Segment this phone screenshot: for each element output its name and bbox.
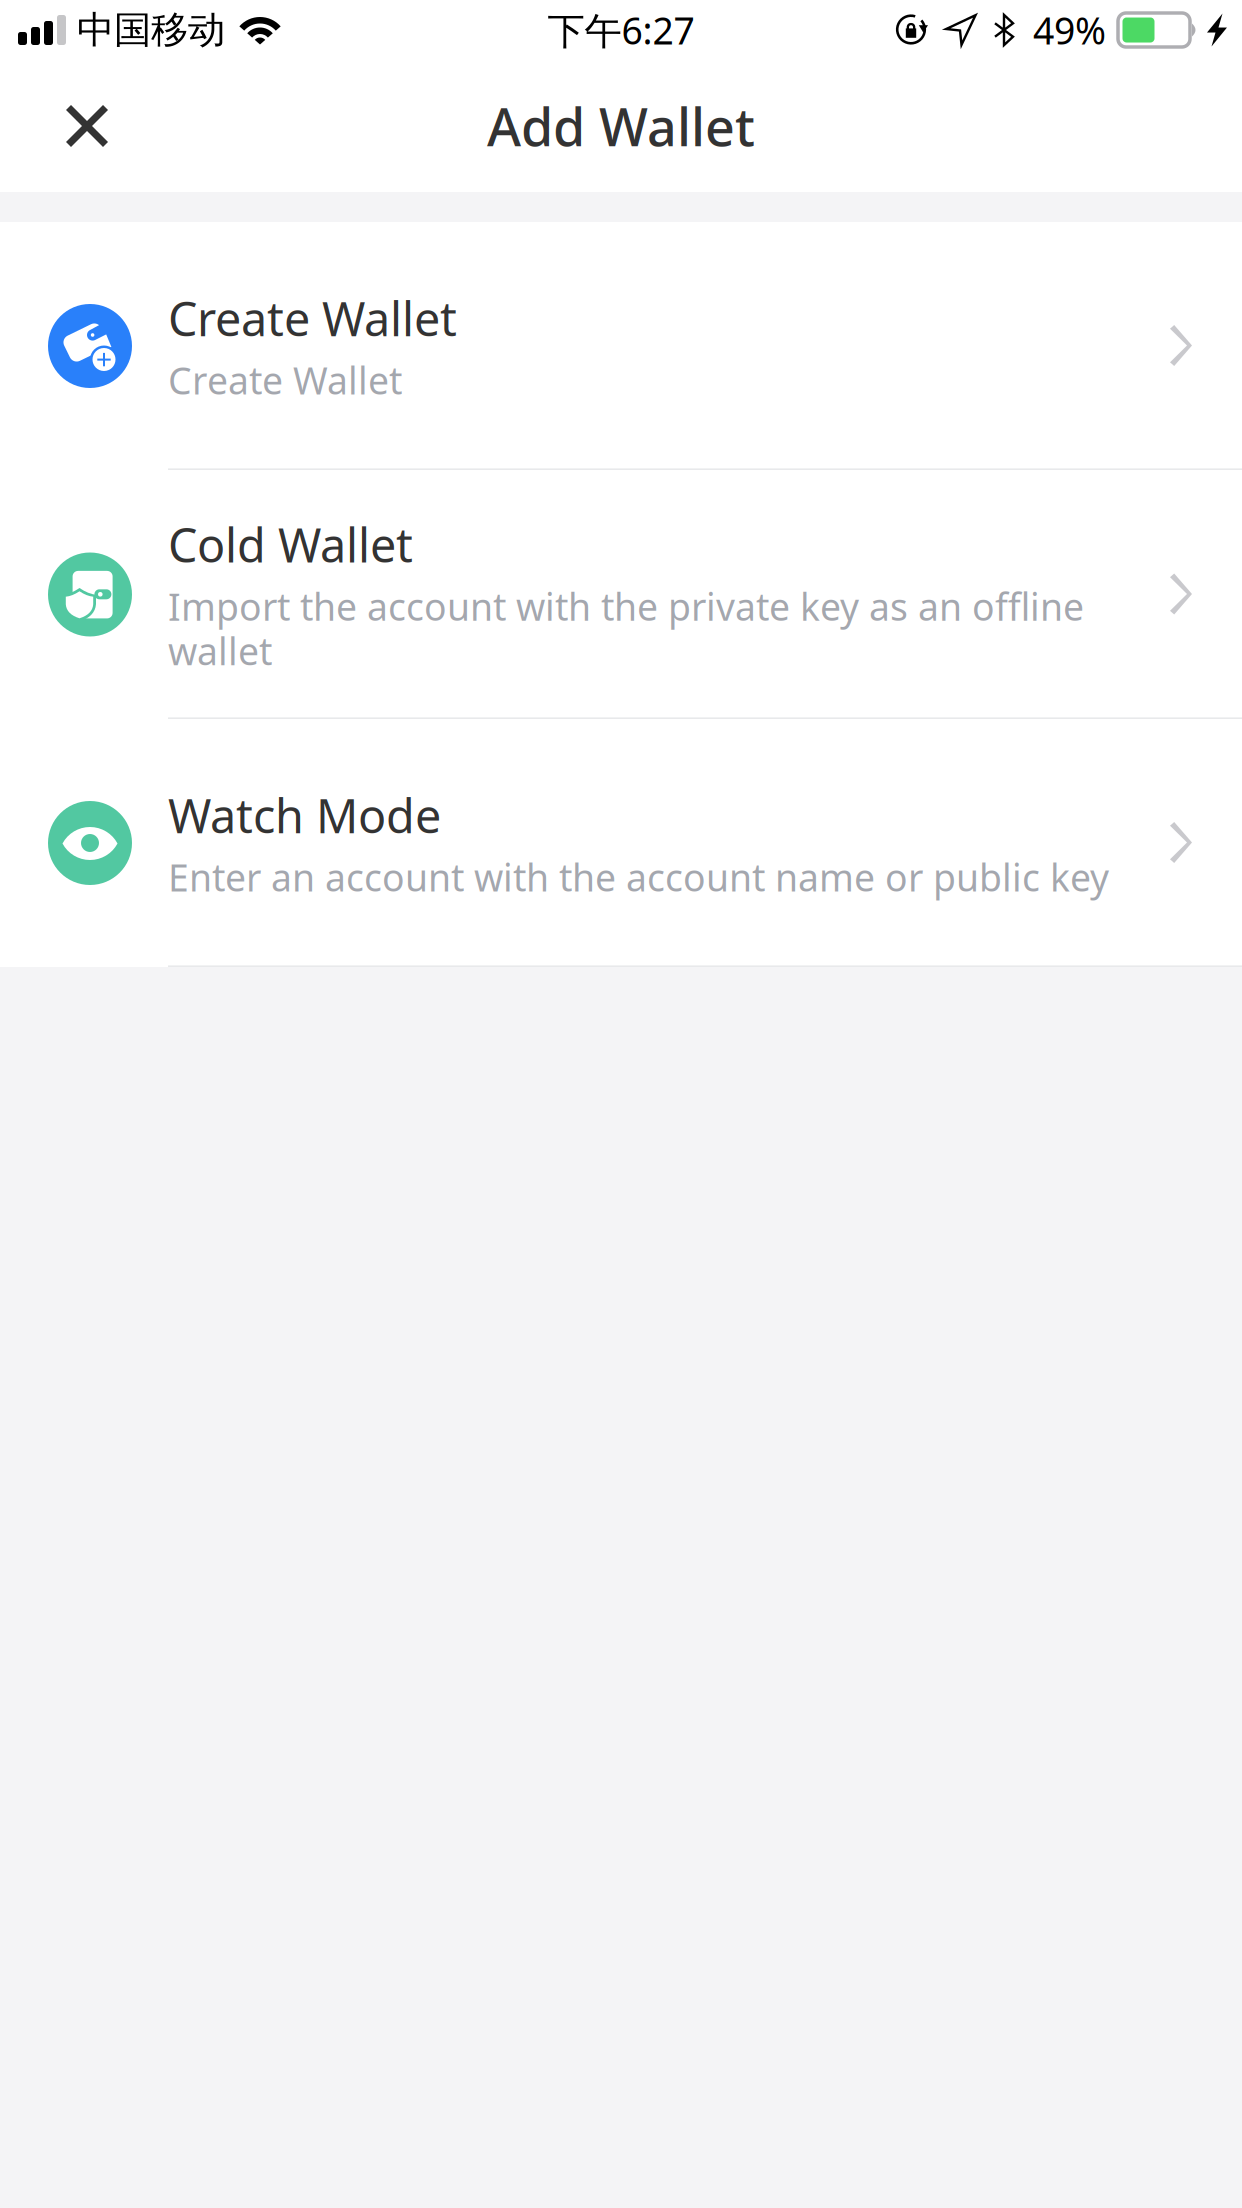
button[interactable]: Watch Mode xyxy=(0,719,1242,967)
staticText: Enter an account with the account name o… xyxy=(168,852,1109,902)
staticText: Import the account with the private key … xyxy=(168,581,1084,676)
staticText: 49% xyxy=(1033,5,1106,55)
staticText: 下午6:27 xyxy=(547,5,694,55)
staticText: Create Wallet xyxy=(168,355,402,405)
staticText: Watch Mode xyxy=(168,784,441,846)
staticText: Cold Wallet xyxy=(168,513,413,575)
button[interactable]: Cold Wallet xyxy=(0,470,1242,719)
staticText: 中国移动 xyxy=(77,7,225,53)
button[interactable]: Create Wallet xyxy=(0,222,1242,470)
button[interactable]: Close xyxy=(0,60,152,192)
staticText: Add Wallet xyxy=(487,91,755,161)
staticText: Create Wallet xyxy=(168,287,457,349)
